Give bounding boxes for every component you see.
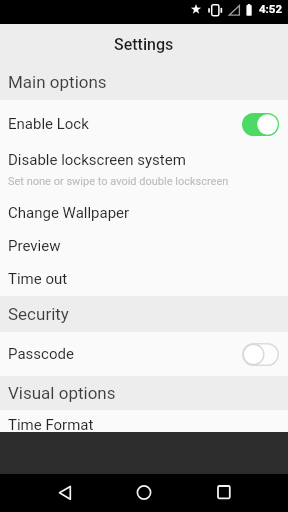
- button[interactable]: [96, 474, 192, 512]
- staticText: Time Format: [8, 416, 94, 434]
- button[interactable]: Time out: [0, 262, 288, 296]
- button[interactable]: [242, 113, 279, 136]
- button[interactable]: Enable Lock: [0, 100, 288, 148]
- staticText: Preview: [8, 237, 61, 255]
- button[interactable]: Time Format: [0, 410, 288, 432]
- button[interactable]: Disable lockscreen system: [0, 148, 288, 196]
- button[interactable]: Passcode: [0, 332, 288, 376]
- button[interactable]: [192, 474, 288, 512]
- staticText: Visual options: [8, 383, 116, 403]
- button[interactable]: [242, 343, 279, 366]
- staticText: Security: [8, 304, 69, 324]
- staticText: 4:52: [259, 2, 283, 15]
- button[interactable]: Change Wallpaper: [0, 196, 288, 230]
- staticText: Time out: [8, 270, 68, 288]
- staticText: Enable Lock: [8, 115, 89, 133]
- staticText: Set none or swipe to avoid double locksc…: [8, 175, 229, 188]
- button[interactable]: [0, 474, 96, 512]
- button[interactable]: Preview: [0, 230, 288, 262]
- staticText: Passcode: [8, 345, 74, 363]
- staticText: Change Wallpaper: [8, 204, 130, 222]
- staticText: Disable lockscreen system: [8, 151, 186, 169]
- staticText: Settings: [114, 35, 174, 54]
- staticText: Main options: [8, 72, 107, 92]
